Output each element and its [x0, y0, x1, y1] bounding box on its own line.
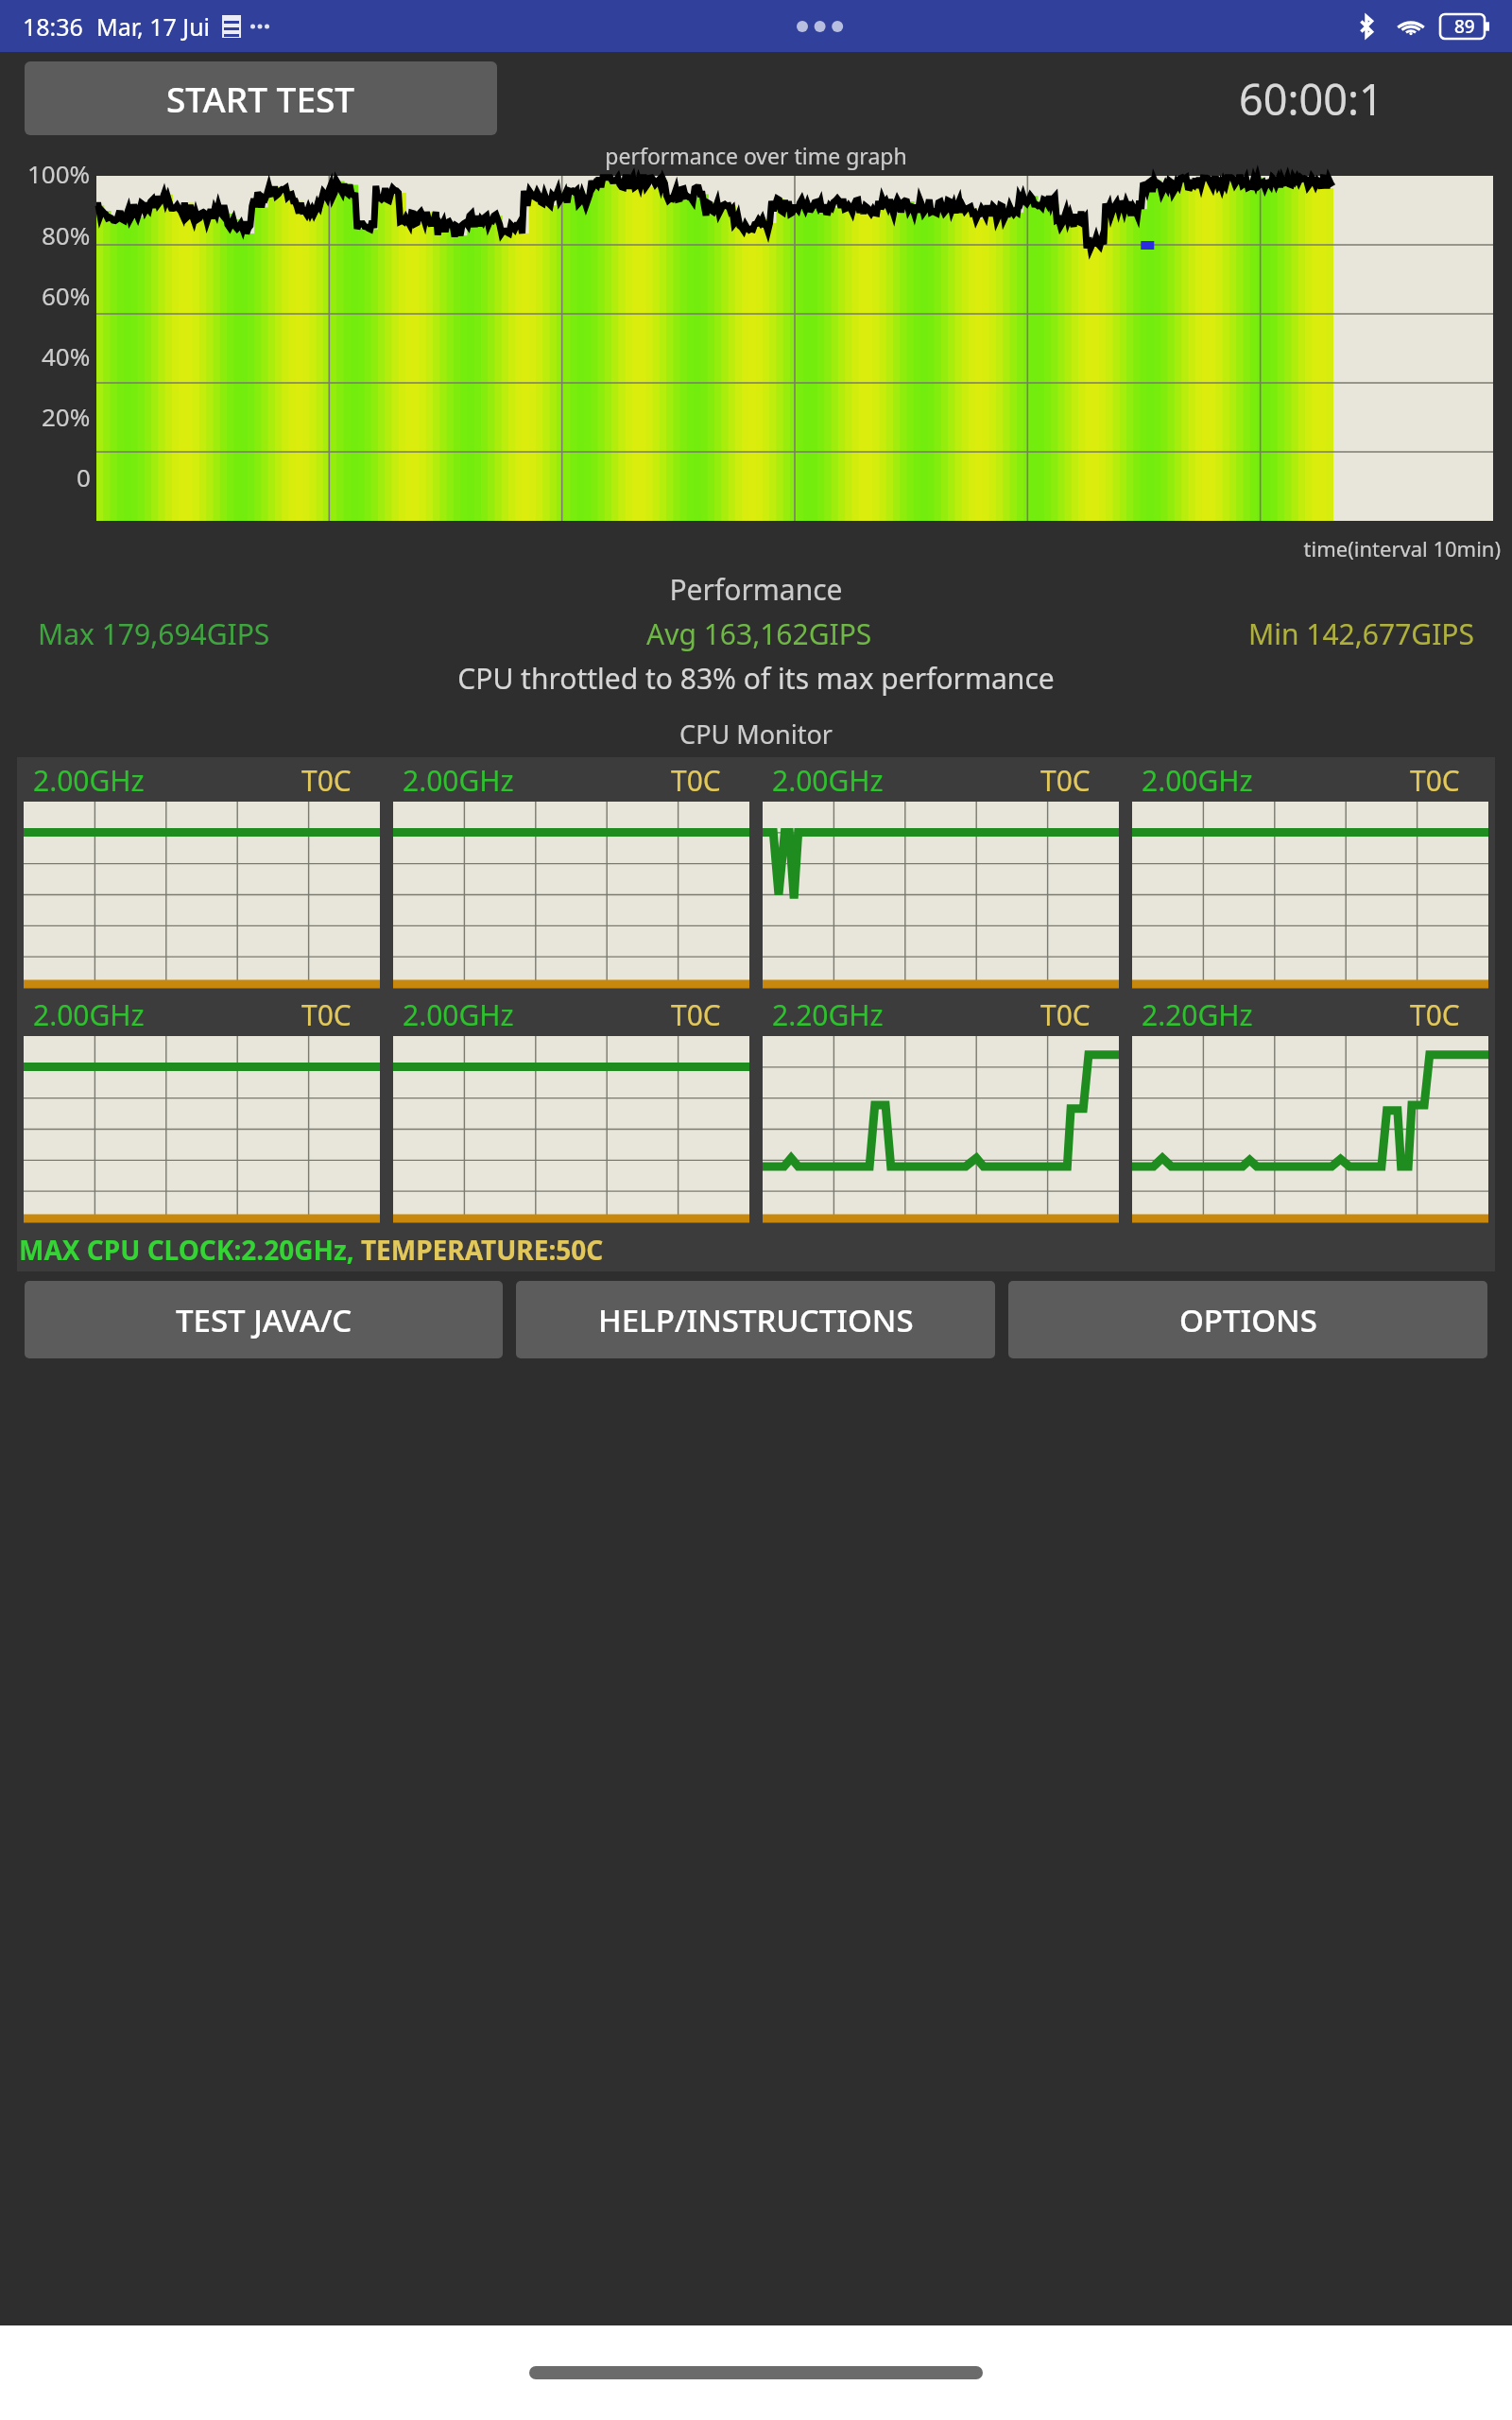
staticText: 0	[77, 460, 91, 493]
staticText: performance over time graph	[0, 141, 1512, 170]
staticText: T0C	[671, 761, 721, 800]
staticText: CPU Monitor	[0, 717, 1512, 752]
staticText: T0C	[671, 995, 721, 1034]
staticText: 2.20GHz	[1142, 995, 1253, 1034]
button[interactable]: TEST JAVA/C	[25, 1281, 503, 1358]
staticText: T0C	[301, 761, 352, 800]
button[interactable]: HELP/INSTRUCTIONS	[516, 1281, 995, 1358]
staticText: Mar, 17 Jui	[96, 10, 211, 43]
staticText: Performance	[0, 570, 1512, 609]
staticText: OPTIONS	[1179, 1299, 1317, 1341]
staticText: 2.20GHz	[772, 995, 884, 1034]
staticText: Min 142,677GIPS	[1248, 614, 1474, 653]
other: Wi-Fi	[1397, 12, 1425, 41]
staticText: 2.00GHz	[1142, 761, 1253, 800]
staticText: Max 179,694GIPS	[38, 614, 270, 653]
staticText: T0C	[1040, 761, 1091, 800]
other: Bluetooth	[1353, 13, 1380, 40]
staticText: T0C	[1410, 995, 1460, 1034]
staticText: 89	[1454, 14, 1475, 39]
staticText: T0C	[301, 995, 352, 1034]
staticText: 40%	[42, 339, 91, 372]
other: Battery 89 percent	[1440, 14, 1489, 39]
staticText: 2.00GHz	[403, 995, 514, 1034]
staticText: 20%	[42, 400, 91, 433]
staticText: 80%	[42, 218, 91, 251]
staticText: 2.00GHz	[772, 761, 884, 800]
staticText: 60%	[42, 279, 91, 312]
staticText: T0C	[1410, 761, 1460, 800]
staticText: 60:00:1	[1239, 70, 1383, 128]
staticText: HELP/INSTRUCTIONS	[598, 1299, 914, 1341]
staticText: START TEST	[166, 75, 355, 122]
staticText: 100%	[27, 157, 91, 190]
staticText: 2.00GHz	[33, 761, 145, 800]
staticText: MAX CPU CLOCK:2.20GHz, TEMPERATURE:50C	[19, 1232, 604, 1268]
staticText: 18:36	[23, 10, 83, 43]
button[interactable]: START TEST	[25, 61, 497, 135]
staticText: TEST JAVA/C	[176, 1299, 352, 1341]
staticText: 2.00GHz	[403, 761, 514, 800]
staticText: CPU throttled to 83% of its max performa…	[0, 659, 1512, 698]
staticText: T0C	[1040, 995, 1091, 1034]
staticText: Avg 163,162GIPS	[646, 614, 872, 653]
button[interactable]: OPTIONS	[1008, 1281, 1487, 1358]
staticText: time(interval 10min)	[0, 534, 1501, 562]
staticText: 2.00GHz	[33, 995, 145, 1034]
